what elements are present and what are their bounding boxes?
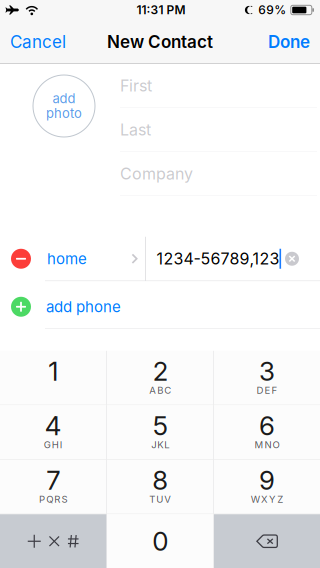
staticText: 7 bbox=[46, 464, 60, 496]
button[interactable]: add phone bbox=[0, 285, 320, 329]
button[interactable]: Remove phone bbox=[0, 237, 36, 281]
staticText: Cancel bbox=[10, 31, 66, 52]
staticText: JKL bbox=[151, 439, 169, 450]
staticText: add phone bbox=[46, 298, 121, 316]
staticText: DEF bbox=[256, 384, 278, 396]
button[interactable]: 1 bbox=[0, 351, 106, 405]
staticText: Last bbox=[120, 120, 151, 139]
staticText: home bbox=[47, 250, 87, 268]
button[interactable]: Last bbox=[120, 108, 317, 152]
staticText: 3 bbox=[259, 355, 275, 387]
staticText: First bbox=[120, 76, 152, 95]
staticText: 69% bbox=[258, 3, 286, 17]
staticText: GHI bbox=[44, 439, 63, 450]
staticText: 11:31 PM bbox=[136, 3, 185, 17]
button[interactable]: Delete bbox=[214, 514, 320, 568]
button[interactable]: 9 bbox=[214, 460, 320, 514]
button[interactable]: Company bbox=[120, 152, 317, 196]
staticText: photo bbox=[46, 105, 82, 121]
button[interactable]: Add photo bbox=[33, 75, 95, 137]
staticText: TUV bbox=[149, 493, 171, 505]
staticText: Company bbox=[120, 164, 193, 183]
staticText: 1 bbox=[48, 355, 58, 387]
button[interactable]: 5 bbox=[107, 405, 213, 459]
button[interactable]: 7 bbox=[0, 460, 106, 514]
button[interactable]: 3 bbox=[214, 351, 320, 405]
button[interactable]: 2 bbox=[107, 351, 213, 405]
staticText: 6 bbox=[259, 410, 275, 441]
staticText: 9 bbox=[259, 464, 275, 496]
staticText: 5 bbox=[153, 410, 168, 441]
button[interactable]: Cancel bbox=[0, 20, 78, 63]
staticText: ABC bbox=[149, 384, 171, 396]
button[interactable]: Done bbox=[256, 20, 320, 63]
button[interactable]: 4 bbox=[0, 405, 106, 459]
staticText: 0 bbox=[152, 525, 168, 557]
staticText: New Contact bbox=[107, 31, 213, 52]
staticText: 1234-56789,123 bbox=[156, 249, 279, 268]
staticText: 8 bbox=[152, 464, 168, 496]
staticText: add bbox=[52, 91, 75, 106]
button[interactable]: home bbox=[36, 237, 145, 281]
button[interactable]: First bbox=[120, 64, 317, 108]
button[interactable]: plus star pound bbox=[0, 514, 106, 568]
button[interactable]: 6 bbox=[214, 405, 320, 459]
button[interactable]: 0 bbox=[107, 514, 213, 568]
button[interactable]: 8 bbox=[107, 460, 213, 514]
staticText: Done bbox=[268, 31, 310, 52]
staticText: WXYZ bbox=[251, 493, 283, 505]
button[interactable]: 1234-56789,123 bbox=[145, 237, 320, 281]
staticText: 2 bbox=[153, 355, 168, 387]
staticText: MNO bbox=[254, 439, 280, 450]
staticText: PQRS bbox=[39, 493, 67, 505]
staticText: 4 bbox=[45, 410, 62, 441]
